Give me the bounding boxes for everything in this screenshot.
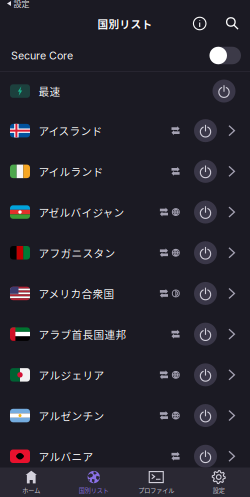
button[interactable]: Information	[188, 12, 211, 35]
staticText: アルバニア	[38, 448, 93, 464]
staticText: Secure Core	[11, 49, 73, 62]
button[interactable]: Connect	[194, 241, 217, 264]
staticText: アイスランド	[38, 123, 102, 138]
button[interactable]: アルバニア	[0, 436, 250, 477]
staticText: アゼルバイジャン	[38, 204, 124, 220]
staticText: 国別リスト	[79, 485, 109, 494]
staticText: アルゼンチン	[38, 408, 104, 423]
button[interactable]: Connect	[194, 282, 217, 305]
button[interactable]: プロファイル	[125, 467, 187, 497]
button[interactable]: Search	[221, 12, 244, 35]
button[interactable]: ホーム	[0, 467, 62, 497]
button[interactable]: アルジェリア	[0, 354, 250, 395]
staticText: アメリカ合衆国	[38, 286, 114, 301]
staticText: 設定	[13, 0, 29, 9]
button[interactable]: 最速	[0, 72, 250, 110]
staticText: アフガニスタン	[38, 245, 115, 260]
button[interactable]: Connect	[194, 119, 217, 142]
staticText: ホーム	[22, 485, 40, 494]
button[interactable]: Connect	[194, 200, 217, 223]
staticText: 最速	[38, 83, 60, 99]
button[interactable]: Connect	[194, 160, 217, 183]
button[interactable]: アルゼンチン	[0, 395, 250, 436]
button[interactable]: 国別リスト	[62, 467, 125, 497]
button[interactable]: Connect	[194, 445, 217, 468]
button[interactable]: Connect	[212, 79, 235, 102]
button[interactable]: アラブ首長国連邦	[0, 314, 250, 354]
staticText: アイルランド	[38, 164, 103, 179]
button[interactable]: Connect	[194, 363, 217, 386]
button[interactable]: アゼルバイジャン	[0, 192, 250, 232]
button[interactable]: アイスランド	[0, 110, 250, 151]
staticText: 国別リスト	[97, 16, 152, 31]
button[interactable]: Secure Core	[0, 40, 250, 71]
staticText: 設定	[213, 485, 225, 494]
staticText: プロファイル	[138, 485, 174, 494]
button[interactable]: Connect	[194, 404, 217, 427]
staticText: アラブ首長国連邦	[38, 326, 126, 342]
button[interactable]: アイルランド	[0, 151, 250, 192]
button[interactable]: アフガニスタン	[0, 232, 250, 273]
button[interactable]: アメリカ合衆国	[0, 273, 250, 314]
button[interactable]: 設定	[187, 467, 250, 497]
button[interactable]: Connect	[194, 323, 217, 346]
staticText: アルジェリア	[38, 367, 104, 382]
